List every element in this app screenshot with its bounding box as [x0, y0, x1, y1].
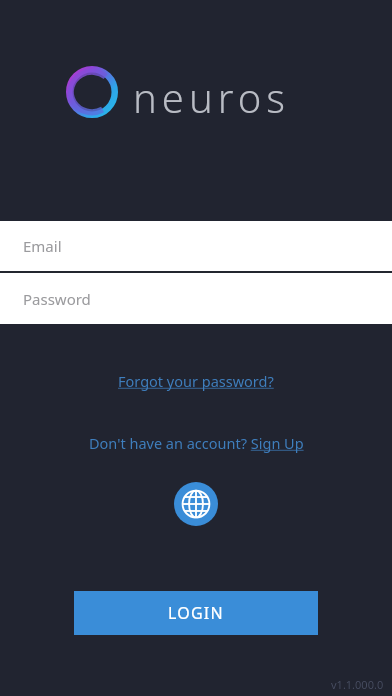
staticText: neuros	[133, 70, 290, 124]
staticText: v1.1.000.0	[331, 677, 384, 692]
staticText: Forgot your password?	[118, 371, 274, 391]
staticText: LOGIN	[168, 602, 224, 624]
staticText: Email	[23, 236, 62, 256]
staticText: Don't have an account? Sign Up	[89, 433, 304, 453]
button[interactable]: LOGIN	[74, 591, 318, 635]
button[interactable]: Forgot your password?	[112, 368, 280, 394]
button[interactable]: Email	[0, 221, 392, 271]
button[interactable]: Change language	[174, 482, 218, 526]
button[interactable]: Don't have an account? Sign Up	[83, 430, 310, 456]
staticText: Password	[23, 289, 91, 309]
button[interactable]: Password	[0, 273, 392, 324]
